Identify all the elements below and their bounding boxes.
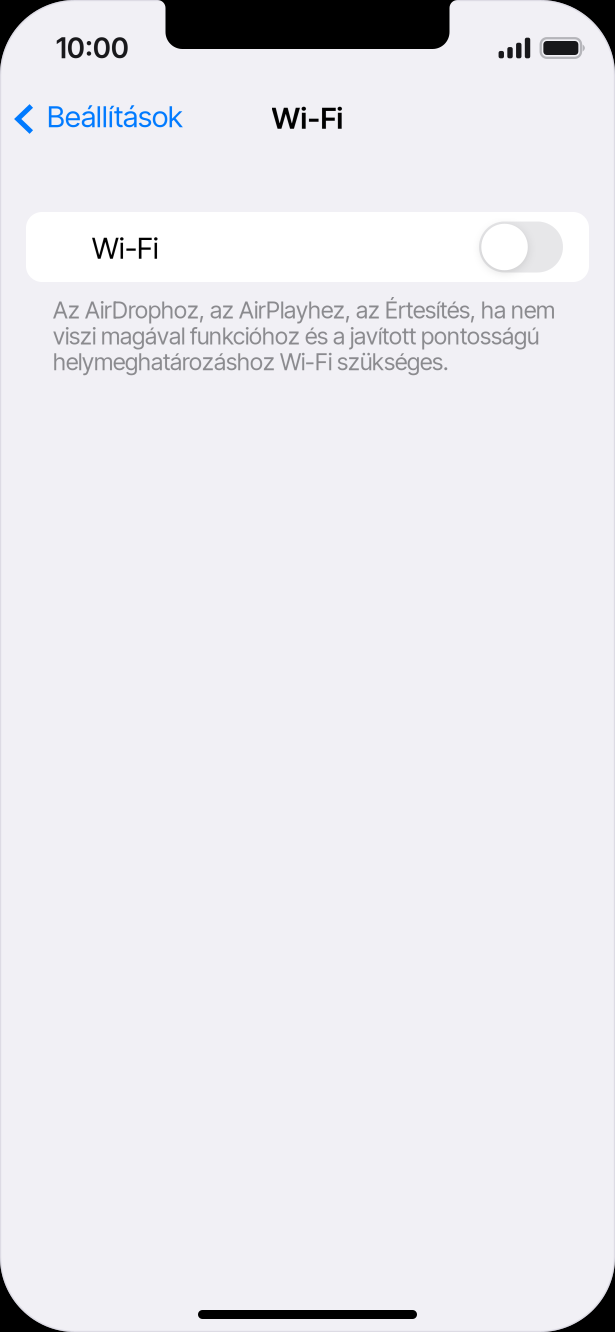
- button[interactable]: Beállítások: [0, 95, 195, 143]
- staticText: Wi-Fi: [92, 230, 159, 266]
- staticText: Beállítások: [47, 99, 183, 134]
- staticText: Az AirDrophoz, az AirPlayhez, az Értesít…: [53, 296, 555, 376]
- staticText: Wi-Fi: [271, 100, 343, 136]
- button[interactable]: Wi-Fi: [479, 212, 563, 282]
- staticText: 10:00: [56, 31, 129, 65]
